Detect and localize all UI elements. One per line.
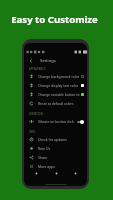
button[interactable]: Rate Us bbox=[24, 144, 87, 153]
staticText: Check for updates bbox=[38, 137, 83, 142]
staticText: Change variable button text color bbox=[38, 92, 80, 97]
staticText: Settings bbox=[40, 58, 56, 63]
button[interactable]: Vibrate on button click bbox=[24, 117, 87, 126]
staticText: APPEARANCE bbox=[29, 67, 46, 71]
staticText: VIBRATION bbox=[29, 112, 43, 116]
button[interactable]: Reset to default colors bbox=[24, 99, 87, 108]
staticText: Reset to default colors bbox=[38, 101, 83, 106]
staticText: Share bbox=[38, 155, 83, 160]
staticText: Vibrate on button click bbox=[38, 119, 76, 124]
staticText: Change background color bbox=[38, 74, 80, 79]
staticText: More apps bbox=[38, 164, 83, 169]
button[interactable]: Change display text color bbox=[24, 81, 87, 90]
button[interactable]: Back bbox=[33, 170, 39, 176]
button[interactable]: Change background color bbox=[24, 72, 87, 81]
button[interactable]: Check for updates bbox=[24, 135, 87, 144]
staticText: Easy to Customize bbox=[0, 13, 109, 26]
button[interactable]: Recent apps bbox=[72, 170, 78, 176]
button[interactable]: Back bbox=[27, 57, 35, 65]
button[interactable]: Change variable button text color bbox=[24, 90, 87, 99]
staticText: Change display text color bbox=[38, 83, 80, 88]
staticText: INFO bbox=[29, 130, 36, 134]
button[interactable]: More apps bbox=[24, 162, 87, 171]
button[interactable]: Home bbox=[53, 170, 59, 176]
button[interactable]: Share bbox=[24, 153, 87, 162]
staticText: Rate Us bbox=[38, 146, 83, 151]
